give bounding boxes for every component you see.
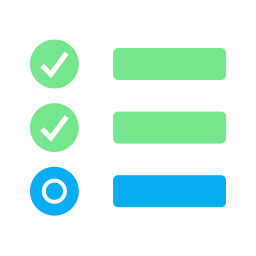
button[interactable]: Completed item <box>30 39 226 88</box>
button[interactable]: Open item <box>30 167 226 216</box>
button[interactable]: Completed item <box>30 103 226 152</box>
